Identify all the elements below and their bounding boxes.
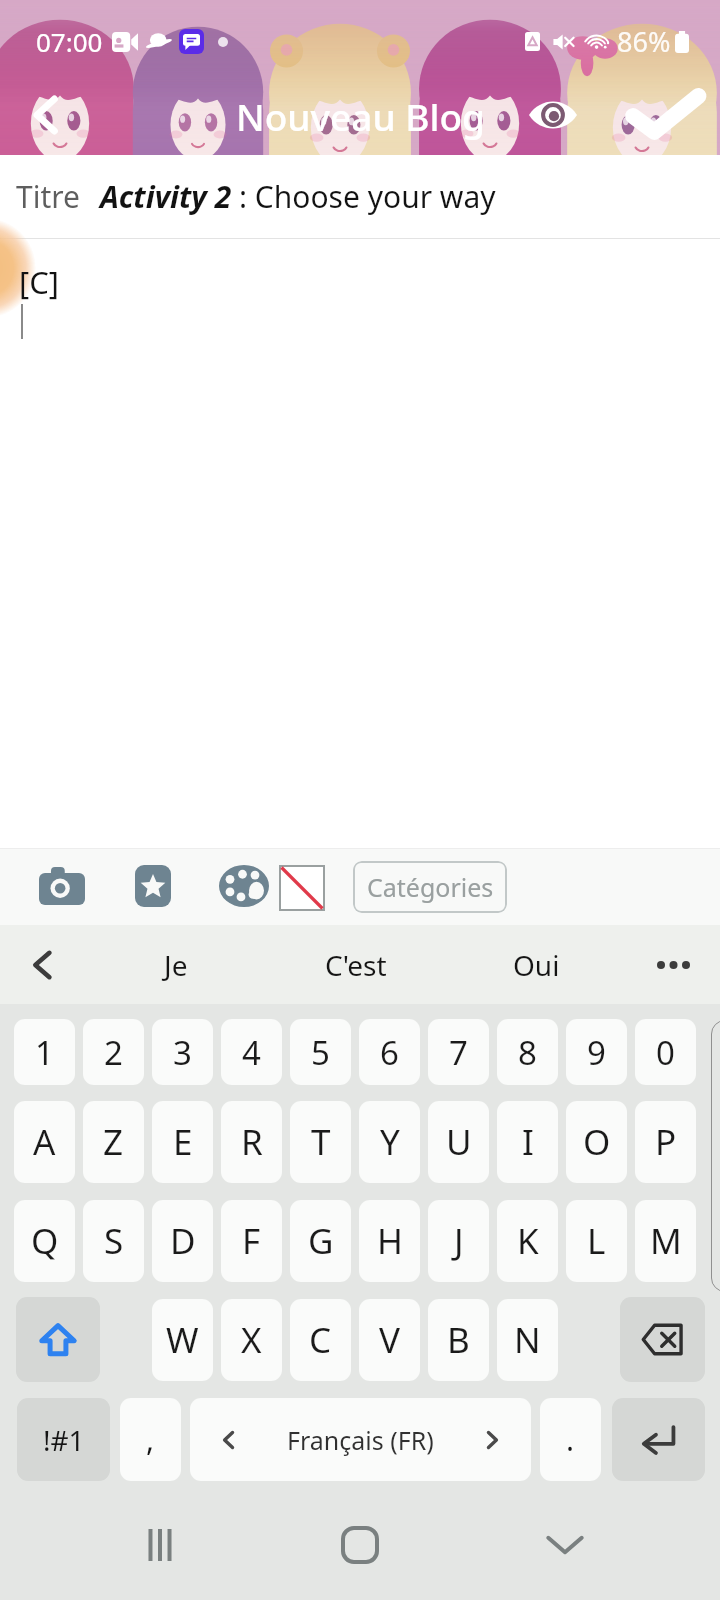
button[interactable]: Home xyxy=(310,1507,410,1583)
staticText: L xyxy=(587,1217,606,1265)
staticText: Nouveau Blog xyxy=(236,91,485,141)
staticText: P xyxy=(655,1118,677,1166)
button[interactable]: O xyxy=(566,1101,627,1183)
button[interactable]: S xyxy=(83,1200,144,1282)
staticText: Catégories xyxy=(367,870,494,904)
button[interactable]: A xyxy=(14,1101,75,1183)
button[interactable]: !#1 xyxy=(17,1398,110,1481)
button[interactable]: Z xyxy=(83,1101,144,1183)
button[interactable]: D xyxy=(152,1200,213,1282)
button[interactable]: E xyxy=(152,1101,213,1183)
staticText: 9 xyxy=(587,1030,606,1075)
button[interactable]: K xyxy=(497,1200,558,1282)
button[interactable]: L xyxy=(566,1200,627,1282)
staticText: E xyxy=(173,1118,193,1166)
staticText: G xyxy=(308,1217,334,1265)
button[interactable]: 7 xyxy=(428,1019,489,1085)
staticText: Activity 2 : Choose your way xyxy=(100,176,496,217)
button[interactable]: H xyxy=(359,1200,420,1282)
staticText: V xyxy=(379,1316,401,1364)
button[interactable]: 6 xyxy=(359,1019,420,1085)
staticText: T xyxy=(311,1118,331,1166)
button[interactable]: Q xyxy=(14,1200,75,1282)
button[interactable]: Oui xyxy=(446,925,626,1004)
button[interactable]: W xyxy=(152,1299,213,1381)
button[interactable]: Catégories xyxy=(353,861,507,913)
staticText: M xyxy=(650,1217,682,1265)
button[interactable]: V xyxy=(359,1299,420,1381)
staticText: 07:00 xyxy=(36,24,103,59)
button[interactable]: 0 xyxy=(635,1019,696,1085)
button[interactable]: 4 xyxy=(221,1019,282,1085)
staticText: Q xyxy=(31,1217,59,1265)
staticText: 8 xyxy=(518,1030,537,1075)
button[interactable]: I xyxy=(497,1101,558,1183)
button[interactable]: No colour xyxy=(276,863,328,913)
button[interactable]: C xyxy=(290,1299,351,1381)
button[interactable]: 5 xyxy=(290,1019,351,1085)
staticText: , xyxy=(146,1419,155,1460)
button[interactable]: 2 xyxy=(83,1019,144,1085)
staticText: S xyxy=(104,1217,124,1265)
button[interactable]: Y xyxy=(359,1101,420,1183)
staticText: Y xyxy=(380,1118,400,1166)
button[interactable]: R xyxy=(221,1101,282,1183)
button[interactable]: Back xyxy=(8,75,84,155)
staticText: C xyxy=(309,1316,332,1364)
staticText: 3 xyxy=(173,1030,192,1075)
staticText: X xyxy=(241,1316,262,1364)
staticText: Français (FR) xyxy=(287,1423,434,1457)
button[interactable]: T xyxy=(290,1101,351,1183)
button[interactable]: Previous suggestions xyxy=(0,925,86,1004)
button[interactable]: N xyxy=(497,1299,558,1381)
staticText: H xyxy=(377,1217,403,1265)
staticText: 2 xyxy=(104,1030,123,1075)
staticText: O xyxy=(583,1118,611,1166)
button[interactable]: Je xyxy=(86,925,266,1004)
button[interactable]: C'est xyxy=(266,925,446,1004)
button[interactable]: Recents xyxy=(110,1507,210,1583)
staticText: U xyxy=(446,1118,472,1166)
button[interactable]: More options xyxy=(626,925,720,1004)
staticText: Oui xyxy=(513,946,560,984)
staticText: I xyxy=(522,1118,534,1166)
staticText: 4 xyxy=(242,1030,261,1075)
staticText: [C] xyxy=(19,261,59,303)
staticText: Z xyxy=(103,1118,124,1166)
button[interactable]: Blog content xyxy=(0,239,720,848)
button[interactable]: . xyxy=(540,1398,601,1481)
staticText: K xyxy=(517,1217,539,1265)
button[interactable]: J xyxy=(428,1200,489,1282)
button[interactable]: X xyxy=(221,1299,282,1381)
button[interactable]: Enter xyxy=(612,1398,705,1481)
staticText: W xyxy=(166,1316,199,1364)
button[interactable]: U xyxy=(428,1101,489,1183)
button[interactable]: F xyxy=(221,1200,282,1282)
button[interactable]: Hide keyboard xyxy=(515,1507,615,1583)
staticText: 7 xyxy=(449,1030,468,1075)
staticText: . xyxy=(566,1419,575,1460)
button[interactable]: Space, Français (FR) xyxy=(190,1398,531,1481)
button[interactable]: , xyxy=(120,1398,181,1481)
button[interactable]: B xyxy=(428,1299,489,1381)
button[interactable]: P xyxy=(635,1101,696,1183)
staticText: A xyxy=(33,1118,56,1166)
button[interactable]: 8 xyxy=(497,1019,558,1085)
staticText: !#1 xyxy=(43,1421,85,1459)
button[interactable]: 1 xyxy=(14,1019,75,1085)
staticText: C'est xyxy=(325,946,387,984)
staticText: 86% xyxy=(617,23,671,60)
button[interactable]: Save xyxy=(620,75,710,155)
button[interactable]: G xyxy=(290,1200,351,1282)
button[interactable]: Shift xyxy=(16,1297,100,1382)
button[interactable]: M xyxy=(635,1200,696,1282)
button[interactable]: 9 xyxy=(566,1019,627,1085)
button[interactable]: Titre xyxy=(0,155,720,238)
button[interactable]: Camera xyxy=(26,856,98,916)
staticText: Je xyxy=(164,946,188,984)
button[interactable]: Preview xyxy=(511,75,595,155)
button[interactable]: Color palette xyxy=(210,856,278,916)
button[interactable]: Sticker xyxy=(120,856,186,916)
button[interactable]: 3 xyxy=(152,1019,213,1085)
button[interactable]: Backspace xyxy=(620,1297,705,1382)
